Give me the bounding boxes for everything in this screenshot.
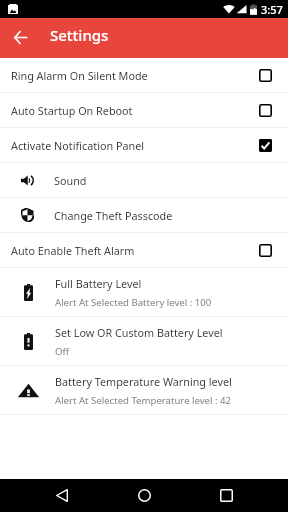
button[interactable]: Auto Startup On Reboot [0,93,288,127]
button[interactable]: Back [0,18,40,58]
staticText: Auto Startup On Reboot [11,103,259,118]
staticText: Settings [50,25,109,45]
staticText: 3:57 [261,2,283,17]
staticText: Battery Temperature Warning level [55,374,232,389]
staticText: Ring Alarm On Silent Mode [11,68,259,83]
button[interactable]: Activate Notification Panel [0,128,288,162]
button[interactable]: Sound [0,163,288,197]
button[interactable]: Ring Alarm On Silent Mode [0,58,288,92]
button[interactable]: Home [124,479,164,512]
staticText: Full Battery Level [55,276,142,291]
button[interactable]: Recents [206,479,246,512]
staticText: Change Theft Passcode [54,208,173,223]
button[interactable]: Change Theft Passcode [0,198,288,232]
staticText: Activate Notification Panel [11,138,259,153]
button[interactable]: Battery Temperature Warning level [0,366,288,414]
button[interactable]: Full Battery Level [0,268,288,316]
staticText: Set Low OR Custom Battery Level [55,325,223,340]
staticText: Auto Enable Theft Alarm [11,243,259,258]
staticText: Alert At Selected Battery level : 100 [55,296,212,309]
staticText: Alert At Selected Temperature level : 42 [55,394,232,407]
staticText: Off [55,345,70,358]
button[interactable]: Back [42,479,82,512]
staticText: Sound [54,173,87,188]
button[interactable]: Auto Enable Theft Alarm [0,233,288,267]
button[interactable]: Set Low OR Custom Battery Level [0,317,288,365]
